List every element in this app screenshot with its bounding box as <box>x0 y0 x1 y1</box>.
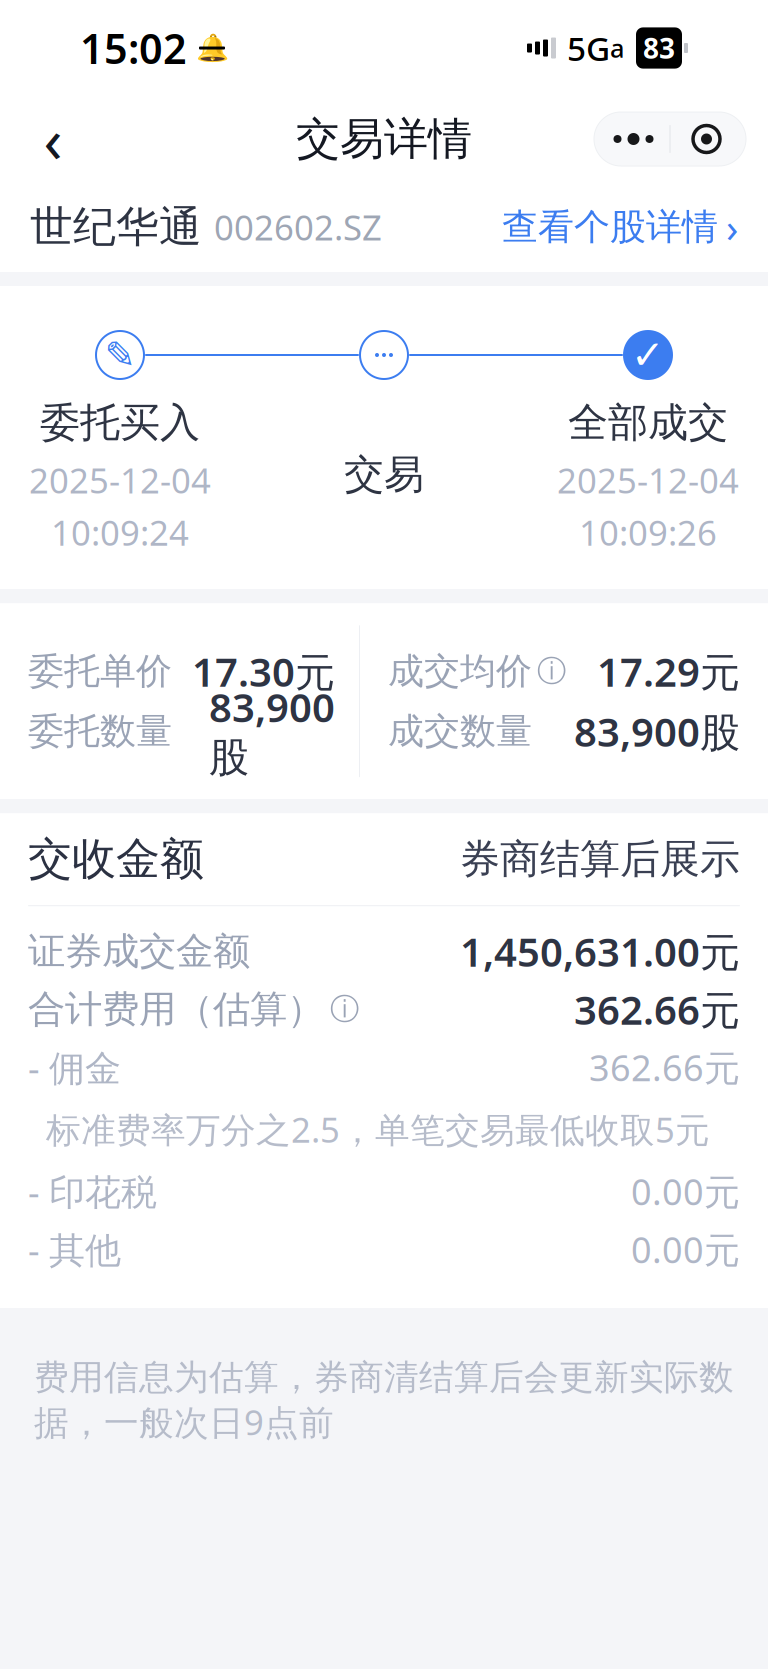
staticText: ‹ <box>43 98 62 180</box>
staticText: 成交数量 <box>388 709 532 753</box>
staticText: 成交均价 <box>388 649 532 693</box>
staticText: ✓ <box>631 332 665 378</box>
staticText: 83,900股 <box>574 705 740 758</box>
staticText: 世纪华通 <box>30 201 202 253</box>
staticText: 83,900股 <box>209 680 335 782</box>
staticText: 委托单价 <box>28 649 172 693</box>
staticText: 委托买入 <box>40 398 200 447</box>
staticText: 2025-12-04 <box>557 457 739 503</box>
staticText: 查看个股详情 <box>502 205 718 249</box>
staticText: - 其他 <box>28 1225 121 1273</box>
staticText: 15:02 <box>80 21 187 75</box>
staticText: 0.00元 <box>631 1167 740 1215</box>
staticText: 362.66元 <box>589 1043 740 1091</box>
staticText: 费用信息为估算，券商清结算后会更新实际数据，一般次日9点前 <box>34 1356 734 1445</box>
button[interactable]: 返回 <box>22 108 84 170</box>
staticText: ✎ <box>104 334 135 376</box>
staticText: 交收金额 <box>28 832 204 886</box>
staticText: 362.66元 <box>574 983 740 1036</box>
staticText: ⓘ <box>330 991 359 1027</box>
button[interactable]: 更多 <box>597 112 669 166</box>
staticText: 002602.SZ <box>214 204 382 250</box>
staticText: 交易 <box>344 450 424 499</box>
staticText: ⓘ <box>537 653 566 689</box>
staticText: 17.29元 <box>597 645 740 698</box>
staticText: a <box>610 31 624 65</box>
staticText: 合计费用（估算） <box>28 986 324 1032</box>
staticText: 交易详情 <box>296 112 472 166</box>
staticText: 10:09:26 <box>579 509 717 555</box>
staticText: 0.00元 <box>631 1225 740 1273</box>
staticText: 标准费率万分之2.5，单笔交易最低收取5元 <box>46 1106 710 1152</box>
staticText: 10:09:24 <box>51 509 189 555</box>
button[interactable]: 关闭 <box>670 112 742 166</box>
staticText: 83 <box>643 29 675 67</box>
staticText: - 佣金 <box>28 1043 121 1091</box>
staticText: 券商结算后展示 <box>460 835 740 884</box>
staticText: 1,450,631.00元 <box>460 925 740 978</box>
staticText: 证券成交金额 <box>28 928 250 974</box>
staticText: 🔔 <box>195 33 228 63</box>
staticText: 17.30元 <box>192 645 335 698</box>
staticText: 全部成交 <box>568 398 728 447</box>
staticText: › <box>726 200 738 253</box>
staticText: 5G <box>567 26 610 70</box>
button[interactable]: 查看个股详情 <box>502 190 738 263</box>
staticText: - 印花税 <box>28 1167 157 1215</box>
staticText: 委托数量 <box>28 709 172 753</box>
staticText: 2025-12-04 <box>29 457 211 503</box>
